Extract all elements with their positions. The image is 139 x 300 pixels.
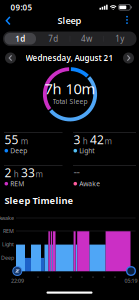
staticText: 2 <box>4 164 11 180</box>
button[interactable]: More <box>0 0 139 300</box>
staticText: Light <box>79 146 94 155</box>
staticText: Deep <box>1 254 14 261</box>
button[interactable]: Back <box>0 0 139 300</box>
button[interactable]: Previous day <box>0 0 139 300</box>
staticText: Light <box>2 241 14 248</box>
staticText: Total Sleep <box>52 97 87 106</box>
staticText: m <box>19 136 28 146</box>
staticText: 05:19 <box>124 277 137 284</box>
staticText: -- <box>73 164 79 178</box>
staticText: 33 <box>21 164 35 180</box>
staticText: h <box>81 136 90 146</box>
staticText: Awake <box>79 179 100 188</box>
staticText: 7h 10m <box>44 79 95 98</box>
staticText: 22:09 <box>11 277 24 284</box>
button[interactable]: 1d <box>0 0 139 300</box>
staticText: Sleep Timeline <box>4 194 73 207</box>
staticText: Awake <box>0 214 14 222</box>
staticText: 09:05 <box>10 2 32 13</box>
button[interactable]: Next day <box>0 0 139 300</box>
staticText: Wednesday, August 21 <box>25 53 113 63</box>
staticText: h <box>12 169 21 179</box>
staticText: Sleep <box>57 14 81 27</box>
staticText: 1y <box>115 33 124 44</box>
staticText: 4w <box>81 33 92 44</box>
button[interactable]: 7d <box>0 0 139 300</box>
button[interactable]: 1y <box>0 0 139 300</box>
staticText: 55 <box>4 131 18 147</box>
staticText: m <box>104 136 111 146</box>
staticText: REM <box>3 227 14 235</box>
staticText: 42 <box>90 131 104 147</box>
staticText: Deep <box>10 146 27 155</box>
staticText: 3 <box>73 131 80 147</box>
staticText: 7d <box>48 33 58 44</box>
staticText: REM <box>10 179 24 188</box>
button[interactable]: 4w <box>0 0 139 300</box>
staticText: m <box>35 169 42 179</box>
staticText: 1d <box>15 33 25 44</box>
